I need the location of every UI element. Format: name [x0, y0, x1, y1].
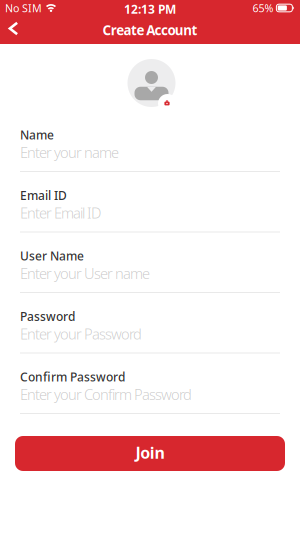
staticText: Enter your Password — [20, 324, 142, 343]
staticText: User Name — [20, 248, 84, 264]
staticText: No SIM — [5, 1, 42, 15]
staticText: 12:13 PM — [124, 1, 176, 17]
button[interactable]: Enter Email ID — [20, 201, 280, 232]
button[interactable]: Enter your Confirm Password — [20, 382, 280, 414]
staticText: Join — [135, 442, 164, 463]
staticText: Email ID — [20, 187, 67, 203]
button[interactable]: Enter your name — [20, 140, 280, 172]
staticText: Name — [20, 127, 54, 143]
staticText: Enter your User name — [20, 263, 150, 283]
button[interactable]: Join — [15, 436, 285, 471]
button[interactable]: Add profile photo — [127, 59, 175, 107]
staticText: Create Account — [102, 21, 198, 39]
staticText: Enter your name — [20, 142, 119, 162]
staticText: 65% — [252, 1, 273, 15]
staticText: Confirm Password — [20, 369, 125, 385]
button[interactable]: Enter your User name — [20, 261, 280, 293]
button[interactable]: Back — [0, 16, 28, 44]
staticText: Password — [20, 308, 75, 324]
button[interactable]: Enter your Password — [20, 322, 280, 353]
staticText: Enter your Confirm Password — [20, 384, 192, 404]
staticText: Enter Email ID — [20, 203, 101, 222]
